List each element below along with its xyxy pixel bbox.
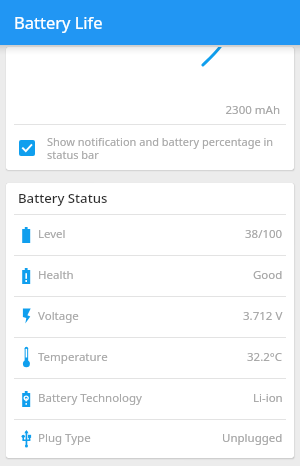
staticText: Unplugged xyxy=(222,430,283,446)
staticText: Battery Life xyxy=(14,11,103,33)
button[interactable]: Battery Technology xyxy=(6,379,294,419)
staticText: Show notification and battery percentage… xyxy=(47,134,278,162)
button[interactable]: Plug Type xyxy=(6,420,294,458)
button[interactable]: Temperature xyxy=(6,338,294,378)
button[interactable]: Voltage xyxy=(6,297,294,337)
staticText: Li-ion xyxy=(253,390,283,406)
staticText: Health xyxy=(38,267,74,283)
staticText: Battery Status xyxy=(18,189,108,207)
staticText: Voltage xyxy=(38,308,79,324)
button[interactable]: Health xyxy=(6,256,294,296)
staticText: 32.2°C xyxy=(247,349,283,365)
staticText: Plug Type xyxy=(38,430,91,446)
button[interactable]: Show notification and battery percentage… xyxy=(6,125,294,170)
button[interactable]: Level xyxy=(6,215,294,255)
staticText: 2300 mAh xyxy=(6,102,280,118)
staticText: 38/100 xyxy=(245,226,283,242)
staticText: Level xyxy=(38,226,66,242)
staticText: Battery Technology xyxy=(38,390,142,406)
staticText: Temperature xyxy=(38,349,108,365)
button[interactable]: Battery Life xyxy=(0,0,300,45)
staticText: Good xyxy=(253,267,283,283)
staticText: 3.712 V xyxy=(243,308,283,324)
